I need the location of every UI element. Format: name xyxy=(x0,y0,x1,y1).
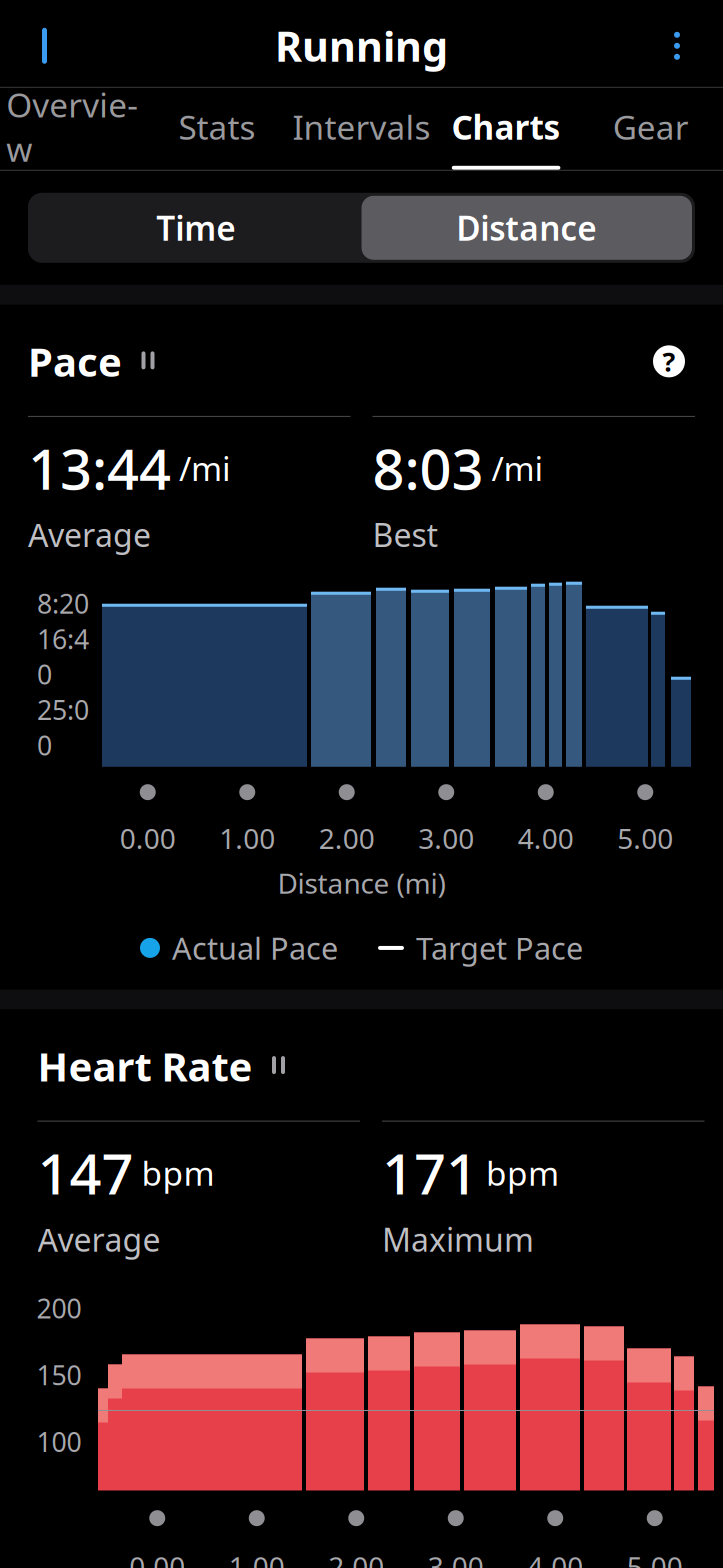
staticText: 13:44 xyxy=(28,431,171,505)
button[interactable]: Charts xyxy=(434,88,578,170)
staticText: Heart Rate xyxy=(37,1039,252,1093)
staticText: 8:03 xyxy=(372,431,483,505)
staticText: 2.00 xyxy=(328,1548,384,1568)
staticText: 2.00 xyxy=(319,820,375,857)
button[interactable]: Overview xyxy=(0,88,145,170)
staticText: 5.00 xyxy=(627,1548,683,1568)
staticText: bpm xyxy=(486,1151,559,1195)
button[interactable]: Intervals xyxy=(289,88,434,170)
staticText: 150 xyxy=(36,1357,81,1393)
staticText: 5.00 xyxy=(617,820,673,857)
staticText: Target Pace xyxy=(416,928,583,968)
staticText: Stats xyxy=(178,105,255,149)
staticText: Intervals xyxy=(292,105,430,149)
staticText: Average xyxy=(37,1218,160,1260)
button[interactable]: Back xyxy=(10,14,86,78)
staticText: 1.00 xyxy=(229,1548,285,1568)
staticText: Pace xyxy=(28,335,122,388)
staticText: Actual Pace xyxy=(172,928,338,968)
staticText: 200 xyxy=(36,1290,81,1326)
staticText: 171 xyxy=(382,1136,478,1210)
staticText: 100 xyxy=(36,1424,81,1459)
button[interactable]: More options xyxy=(641,14,713,78)
button[interactable]: Stats xyxy=(145,88,289,170)
staticText: /mi xyxy=(491,446,543,490)
staticText: ? xyxy=(662,344,675,379)
staticText: 4.00 xyxy=(518,820,574,857)
staticText: 16:40 xyxy=(37,621,89,692)
staticText: 8:20 xyxy=(37,586,89,621)
staticText: 3.00 xyxy=(428,1548,484,1568)
button[interactable]: Help about pace xyxy=(643,335,695,387)
button[interactable]: Heart Rate xyxy=(37,1033,292,1099)
staticText: bpm xyxy=(141,1151,214,1195)
staticText: Gear xyxy=(613,105,689,149)
button[interactable]: Time xyxy=(31,196,361,260)
staticText: Overview xyxy=(6,82,138,171)
staticText: Average xyxy=(28,513,151,556)
staticText: Distance xyxy=(456,206,597,250)
staticText: 147 xyxy=(37,1136,133,1210)
staticText: 25:00 xyxy=(37,692,89,763)
staticText: 3.00 xyxy=(418,820,474,857)
staticText: /mi xyxy=(179,446,231,490)
button[interactable]: Gear xyxy=(578,88,723,170)
staticText: Charts xyxy=(452,105,561,149)
staticText: Distance (mi) xyxy=(277,864,445,902)
staticText: 1.00 xyxy=(219,820,275,857)
staticText: Maximum xyxy=(382,1218,534,1260)
staticText: 0.00 xyxy=(129,1548,185,1568)
button[interactable]: Distance xyxy=(361,196,692,260)
staticText: Time xyxy=(156,206,236,250)
staticText: 4.00 xyxy=(527,1548,583,1568)
staticText: Running xyxy=(275,18,448,73)
button[interactable]: Pace xyxy=(28,329,162,394)
staticText: Best xyxy=(372,513,438,556)
staticText: 0.00 xyxy=(120,820,176,857)
